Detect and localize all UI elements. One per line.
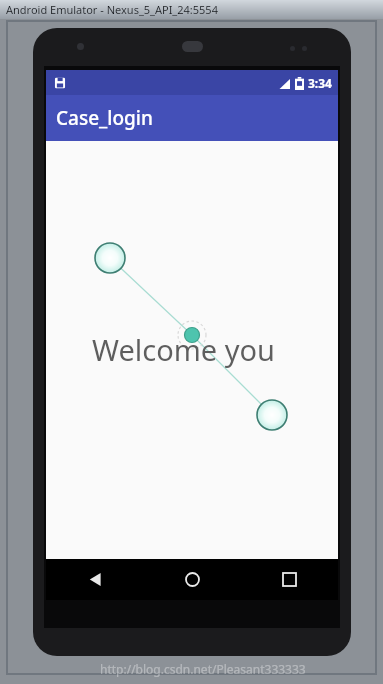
button[interactable]: Back — [46, 559, 144, 600]
button[interactable]: Case_login — [46, 95, 338, 141]
staticText: Welcome you — [92, 330, 275, 369]
button[interactable] — [46, 141, 338, 559]
staticText: Android Emulator - Nexus_5_API_24:5554 — [6, 2, 218, 17]
button[interactable]: Recent apps — [241, 559, 338, 600]
button[interactable]: Home — [144, 559, 241, 600]
staticText: http://blog.csdn.net/Pleasant333333 — [100, 661, 306, 677]
staticText: Case_login — [56, 105, 153, 131]
staticText: 3:34 — [308, 75, 332, 91]
